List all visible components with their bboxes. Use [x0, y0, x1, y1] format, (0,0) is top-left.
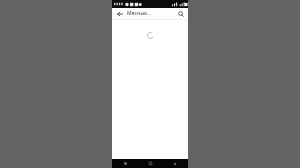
button[interactable]: Search: [176, 9, 185, 18]
button[interactable]: Recent apps: [170, 159, 180, 168]
button[interactable]: Home: [145, 159, 155, 168]
button[interactable]: Back: [115, 9, 124, 18]
button[interactable]: Back: [120, 159, 130, 168]
staticText: Мясные блюда: [127, 10, 151, 17]
